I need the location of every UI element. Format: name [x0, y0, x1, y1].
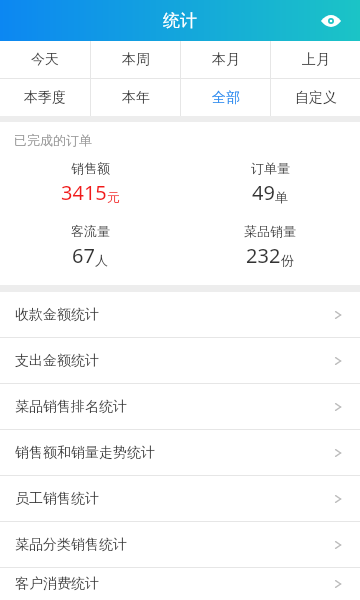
staticText: 本周 [122, 51, 150, 69]
staticText: 销售额 [71, 160, 110, 176]
button[interactable]: 员工销售统计 [0, 476, 360, 521]
staticText: 菜品分类销售统计 [15, 536, 127, 554]
button[interactable]: 自定义 [271, 79, 360, 116]
staticText: 本季度 [24, 89, 66, 107]
staticText: 菜品销售排名统计 [15, 398, 127, 416]
staticText: 订单量 [251, 160, 290, 176]
button[interactable]: 收款金额统计 [0, 292, 360, 337]
button[interactable]: 本周 [91, 41, 180, 78]
staticText: 已完成的订单 [14, 132, 92, 148]
staticText: 支出金额统计 [15, 352, 99, 370]
staticText: 自定义 [295, 89, 337, 107]
button[interactable]: 本季度 [0, 79, 90, 116]
button[interactable]: 销售额和销量走势统计 [0, 430, 360, 475]
button[interactable]: Toggle visibility [316, 6, 346, 36]
button[interactable]: 菜品分类销售统计 [0, 522, 360, 567]
staticText: 上月 [302, 51, 330, 69]
button[interactable]: 全部 [181, 79, 270, 116]
staticText: 今天 [31, 51, 59, 69]
staticText: 销售额和销量走势统计 [15, 444, 155, 462]
staticText: 客户消费统计 [15, 575, 99, 593]
staticText: 单 [275, 189, 288, 205]
staticText: 员工销售统计 [15, 490, 99, 508]
staticText: 收款金额统计 [15, 306, 99, 324]
button[interactable]: 上月 [271, 41, 360, 78]
button[interactable]: 今天 [0, 41, 90, 78]
button[interactable]: 客户消费统计 [0, 568, 360, 600]
staticText: 菜品销量 [244, 223, 296, 239]
staticText: 本月 [212, 51, 240, 69]
button[interactable]: 支出金额统计 [0, 338, 360, 383]
staticText: 49 [252, 179, 275, 206]
button[interactable]: 本月 [181, 41, 270, 78]
button[interactable]: 菜品销售排名统计 [0, 384, 360, 429]
staticText: 3415 [61, 179, 107, 206]
staticText: 67 [72, 242, 95, 269]
staticText: 人 [95, 252, 108, 268]
staticText: 份 [281, 252, 294, 268]
staticText: 客流量 [71, 223, 110, 239]
staticText: 本年 [122, 89, 150, 107]
button[interactable]: 本年 [91, 79, 180, 116]
staticText: 元 [107, 189, 120, 205]
staticText: 全部 [212, 89, 240, 107]
staticText: 232 [246, 242, 281, 269]
staticText: 统计 [163, 10, 197, 31]
